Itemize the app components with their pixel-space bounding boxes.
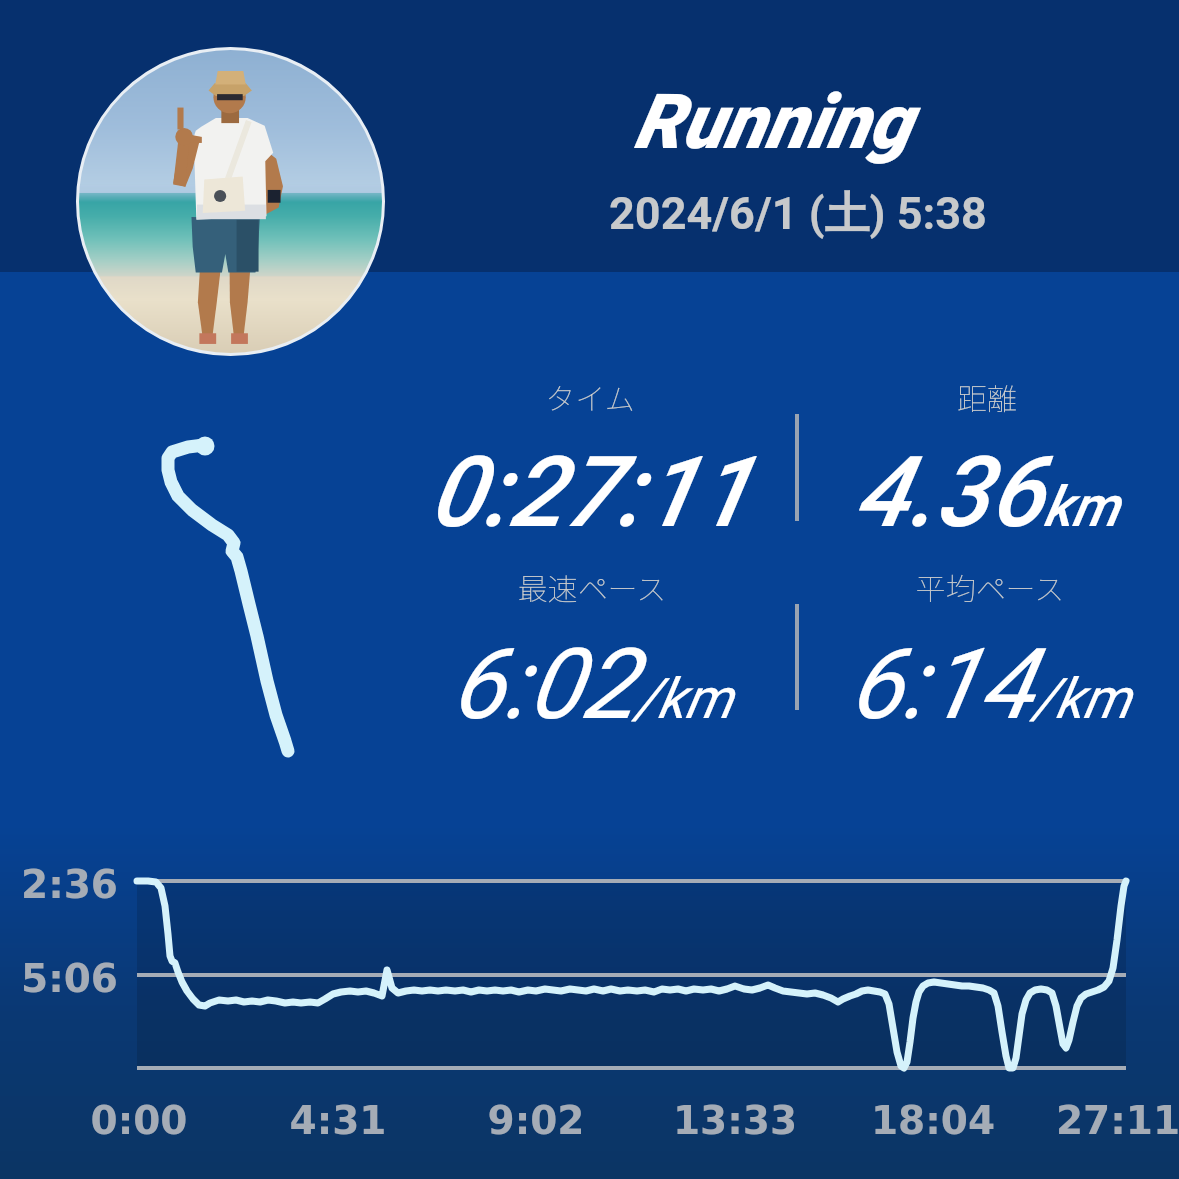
- staticText: 6:02/km: [412, 627, 772, 742]
- button[interactable]: 平均ペース: [810, 565, 1170, 735]
- staticText: 0:00: [29, 1098, 249, 1143]
- staticText: 18:04: [823, 1098, 1043, 1143]
- button[interactable]: Running: [430, 60, 1160, 250]
- staticText: 2024/6/1 (土) 5:38: [609, 186, 987, 243]
- staticText: 13:33: [625, 1098, 845, 1143]
- staticText: Running: [634, 77, 912, 166]
- staticText: 4.36km: [807, 435, 1167, 550]
- staticText: 2:36: [21, 862, 119, 907]
- button[interactable]: Profile photo: [76, 47, 385, 356]
- button[interactable]: 最速ペース: [412, 565, 772, 735]
- staticText: 平均ペース: [810, 565, 1170, 608]
- button[interactable]: タイム: [410, 375, 770, 545]
- staticText: 9:02: [426, 1098, 646, 1143]
- staticText: 4:31: [228, 1098, 448, 1143]
- staticText: タイム: [410, 375, 770, 418]
- staticText: 5:06: [21, 956, 119, 1001]
- button[interactable]: 距離: [807, 375, 1167, 545]
- staticText: 6:14/km: [810, 627, 1170, 742]
- staticText: 最速ペース: [412, 565, 772, 608]
- staticText: 27:11: [1008, 1098, 1179, 1143]
- staticText: 距離: [807, 375, 1167, 418]
- staticText: 0:27:11: [410, 435, 770, 550]
